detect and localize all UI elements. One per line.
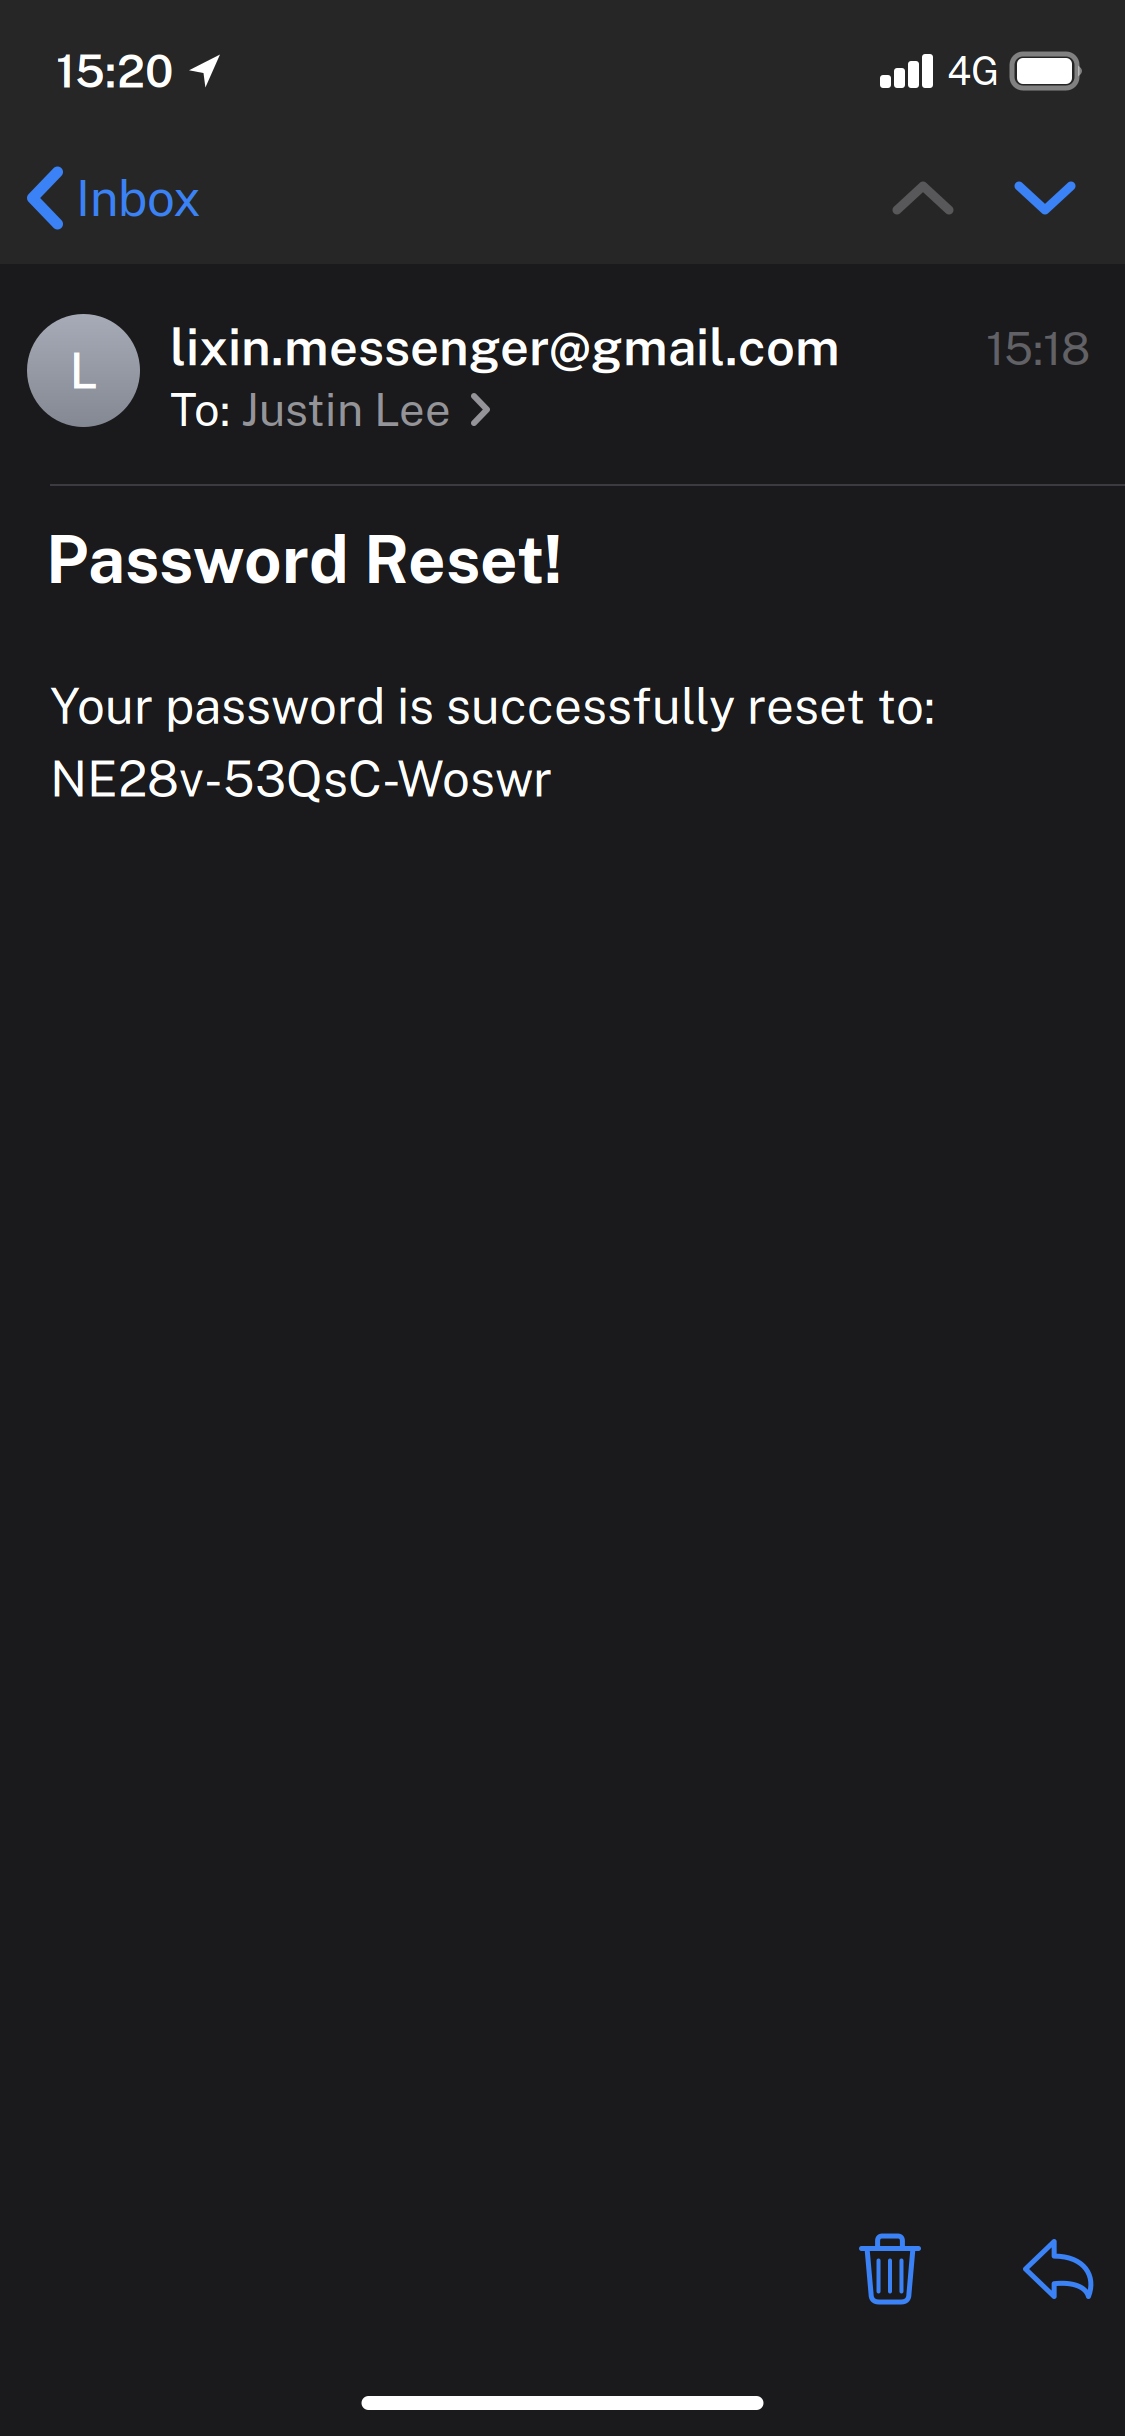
staticText: Inbox: [76, 169, 201, 227]
staticText: 15:18: [986, 322, 1090, 375]
staticText: To:: [170, 383, 241, 436]
staticText: NE28v-53QsC-Woswr: [50, 750, 552, 808]
button[interactable]: Inbox: [0, 132, 223, 264]
button[interactable]: Delete: [835, 2214, 945, 2324]
staticText: Your password is successfully reset to:: [50, 677, 935, 735]
staticText: 15:20: [56, 44, 174, 98]
button[interactable]: To:: [170, 386, 490, 432]
staticText: lixin.messenger@gmail.com: [170, 317, 840, 376]
staticText: L: [69, 341, 97, 399]
staticText: Justin Lee: [241, 383, 451, 436]
button[interactable]: Reply: [1003, 2214, 1113, 2324]
button[interactable]: Previous message: [862, 132, 984, 264]
staticText: Password Reset!: [46, 521, 562, 598]
staticText: 4G: [947, 48, 999, 94]
button[interactable]: Next message: [984, 132, 1106, 264]
